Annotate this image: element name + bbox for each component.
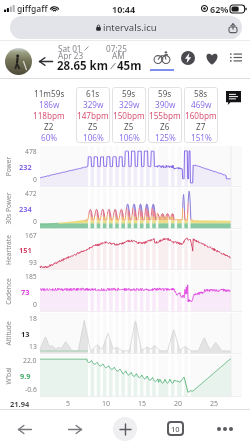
staticText: 11m59s: [34, 88, 65, 99]
staticText: 61s: [86, 88, 100, 99]
staticText: 13: [29, 342, 37, 351]
staticText: Apr 23: [58, 50, 84, 61]
staticText: 0: [33, 217, 37, 226]
staticText: 10: [102, 399, 111, 409]
staticText: 472: [25, 189, 37, 198]
staticText: 45m: [117, 58, 142, 74]
button[interactable]: Ride: [148, 44, 176, 75]
staticText: -0.6: [25, 385, 37, 394]
staticText: 106%: [83, 132, 104, 143]
staticText: 22.0: [23, 356, 37, 365]
button[interactable]: Forward: [60, 417, 90, 441]
staticText: Sat 01: [58, 43, 82, 54]
staticText: Altitude: [3, 303, 12, 363]
staticText: 232: [19, 162, 32, 172]
button[interactable]: Tabs: [167, 421, 184, 436]
staticText: 30s Power: [3, 178, 12, 238]
staticText: 18: [29, 314, 37, 323]
button[interactable]: Laps: [224, 44, 248, 75]
staticText: 150bpm: [113, 110, 145, 121]
staticText: 160bpm: [185, 110, 217, 121]
staticText: 20: [174, 399, 183, 409]
button[interactable]: 59s: [112, 87, 146, 143]
staticText: 478: [25, 147, 37, 156]
staticText: intervals.icu: [103, 21, 157, 34]
staticText: 60%: [41, 132, 58, 143]
staticText: Heartrate: [4, 220, 13, 280]
staticText: 93: [29, 258, 37, 267]
staticText: AM: [112, 50, 125, 61]
staticText: Z6: [160, 121, 170, 132]
staticText: 25: [210, 399, 219, 409]
staticText: Z5: [88, 121, 98, 132]
staticText: 10:44: [112, 3, 136, 15]
button[interactable]: More: [212, 418, 238, 440]
staticText: 234: [19, 204, 32, 214]
staticText: 59s: [158, 88, 172, 99]
staticText: Power: [3, 136, 12, 196]
staticText: 469w: [191, 99, 212, 110]
staticText: Cadence: [3, 261, 12, 321]
button[interactable]: 11m59s: [24, 88, 74, 143]
staticText: 5: [66, 399, 71, 409]
staticText: 151: [19, 245, 32, 255]
button[interactable]: 59s: [148, 87, 182, 143]
button[interactable]: Back: [10, 417, 40, 441]
staticText: 329w: [83, 99, 104, 110]
staticText: 21.94: [10, 399, 30, 409]
staticText: Z5: [124, 121, 134, 132]
staticText: 167: [25, 231, 37, 240]
staticText: 118bpm: [33, 110, 65, 121]
button[interactable]: Heart rate: [200, 44, 224, 75]
button[interactable]: 58s: [184, 87, 218, 143]
button[interactable]: Comments: [226, 91, 241, 105]
staticText: 125%: [155, 132, 176, 143]
staticText: 106%: [119, 132, 140, 143]
staticText: 390w: [155, 99, 176, 110]
staticText: 07:25: [106, 43, 127, 54]
staticText: giffgaff: [17, 3, 48, 15]
staticText: 147bpm: [77, 110, 109, 121]
staticText: 15: [138, 399, 147, 409]
staticText: W'bal: [4, 346, 13, 406]
button[interactable]: New tab: [113, 417, 137, 441]
staticText: 155bpm: [149, 110, 181, 121]
button[interactable]: 61s: [76, 87, 110, 143]
staticText: Z2: [44, 121, 54, 132]
staticText: 73: [21, 287, 30, 297]
staticText: 28.65 km: [57, 58, 108, 74]
staticText: 186w: [39, 99, 60, 110]
staticText: 0: [33, 300, 37, 309]
staticText: 9.9: [20, 371, 31, 381]
staticText: Z7: [196, 121, 206, 132]
staticText: 151%: [191, 132, 212, 143]
button[interactable]: Profile: [5, 48, 32, 75]
staticText: 59s: [122, 88, 136, 99]
staticText: 329w: [119, 99, 140, 110]
staticText: 10: [171, 424, 180, 434]
staticText: 58s: [194, 88, 208, 99]
button[interactable]: Back: [36, 51, 56, 71]
staticText: 0: [33, 175, 37, 184]
button[interactable]: intervals.icu: [10, 16, 242, 39]
staticText: 62%: [210, 3, 229, 15]
staticText: 13: [21, 329, 30, 339]
button[interactable]: Power: [176, 44, 200, 75]
button[interactable]: Share: [224, 19, 242, 37]
staticText: 185: [25, 272, 37, 281]
